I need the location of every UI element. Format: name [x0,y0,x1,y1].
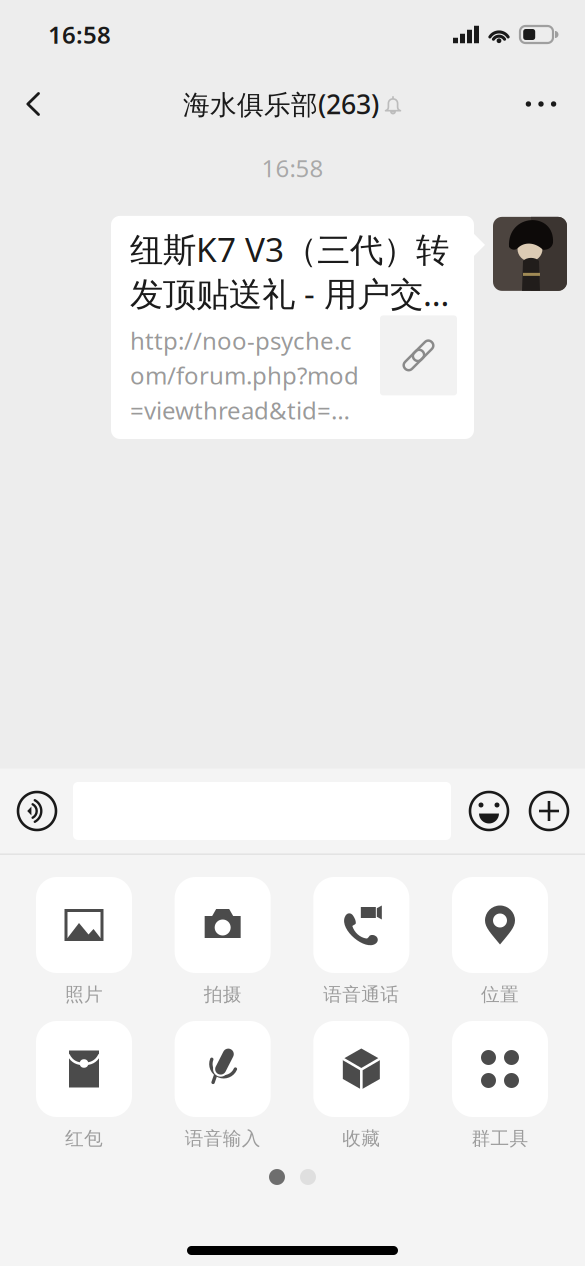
staticText: 语音输入 [185,1127,261,1150]
staticText: 16:58 [261,152,323,184]
button[interactable]: 位置 [452,877,548,1008]
staticText: 纽斯K7 V3（三代）转 [130,227,449,271]
staticText: 拍摄 [204,983,242,1006]
staticText: 照片 [65,983,103,1006]
button[interactable]: 群工具 [452,1021,548,1152]
button[interactable]: 红包 [36,1021,132,1152]
staticText: 红包 [65,1127,103,1150]
button[interactable]: More options [529,791,569,831]
button[interactable]: 语音通话 [313,877,409,1008]
staticText: =viewthread&tid=… [130,394,350,426]
button[interactable]: 照片 [36,877,132,1008]
button[interactable]: 收藏 [313,1021,409,1152]
staticText: 语音通话 [323,983,399,1006]
button[interactable]: More [512,75,570,133]
button[interactable]: 语音输入 [175,1021,271,1152]
button[interactable]: Back [4,75,62,133]
staticText: 收藏 [342,1127,380,1150]
button[interactable]: 拍摄 [175,877,271,1008]
staticText: 16:58 [48,19,111,50]
staticText: om/forum.php?mod [130,359,359,391]
button[interactable]: Emoji [469,791,509,831]
button[interactable]: Voice message [17,791,57,831]
staticText: 海水俱乐部(263) [183,86,379,122]
staticText: http://noo-psyche.c [130,324,352,356]
staticText: 发顶贴送礼 - 用户交… [130,271,449,315]
staticText: 位置 [481,983,519,1006]
staticText: 群工具 [471,1127,528,1150]
